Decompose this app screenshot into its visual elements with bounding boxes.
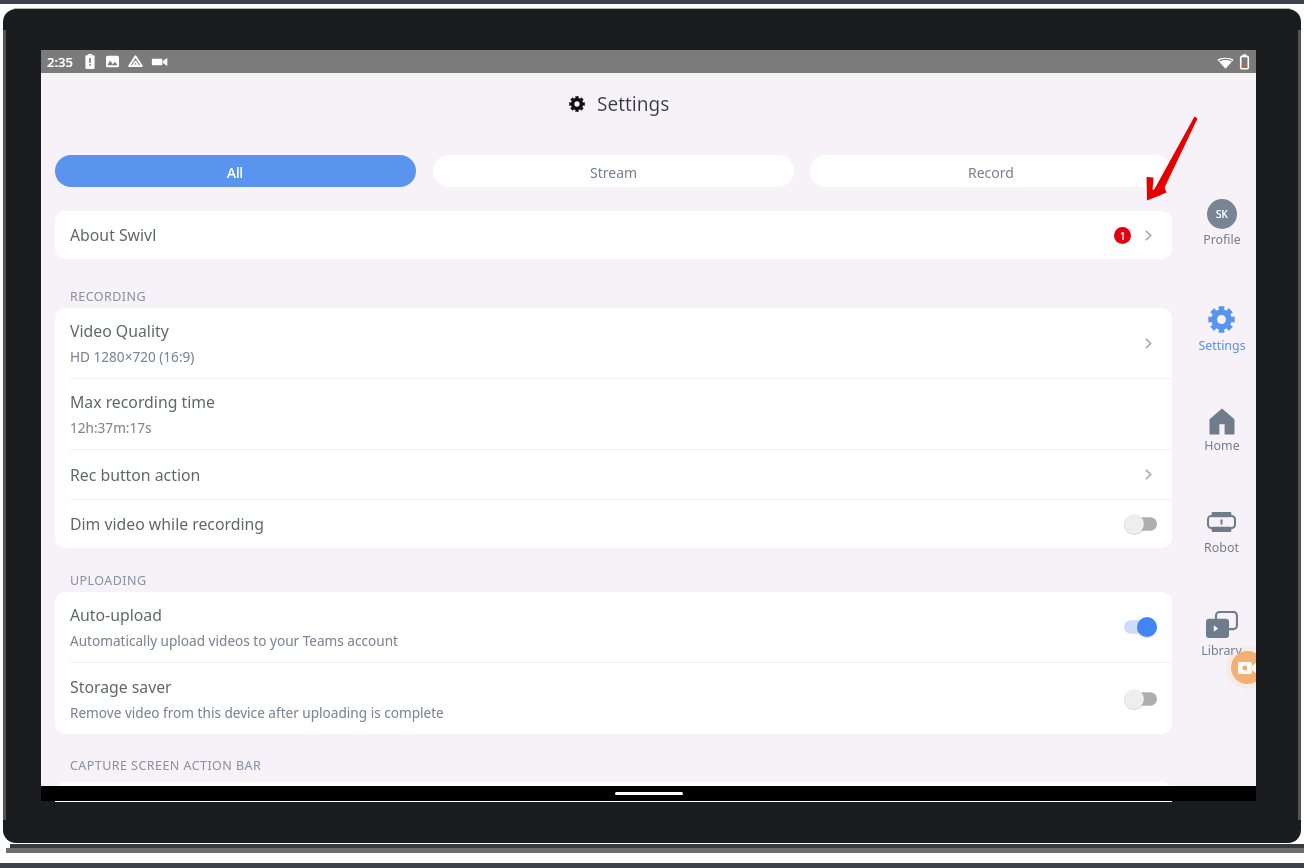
staticText: Storage saver (70, 676, 172, 698)
staticText: Auto-upload (70, 604, 162, 626)
button[interactable]: Home (1187, 408, 1256, 460)
staticText: Automatically upload videos to your Team… (70, 631, 398, 650)
staticText: Remove video from this device after uplo… (70, 703, 444, 722)
staticText: HD 1280×720 (16:9) (70, 347, 195, 366)
staticText: UPLOADING (70, 572, 147, 589)
button[interactable]: SK (1187, 199, 1256, 251)
staticText: CAPTURE SCREEN ACTION BAR (70, 757, 262, 774)
button[interactable]: Rec button action (55, 450, 1172, 499)
staticText: About Swivl (70, 224, 157, 246)
button[interactable]: Auto-upload, on (1124, 617, 1157, 637)
staticText: 12h:37m:17s (70, 418, 152, 437)
staticText: RECORDING (70, 288, 146, 305)
staticText: Record (968, 163, 1014, 182)
staticText: Video Quality (70, 320, 169, 342)
button[interactable]: Settings (1187, 306, 1256, 358)
staticText: Stream (590, 163, 638, 182)
staticText: Settings (597, 91, 670, 117)
staticText: Profile (1203, 231, 1241, 248)
staticText: Robot (1204, 539, 1239, 556)
button[interactable]: About Swivl (55, 211, 1172, 259)
button[interactable]: Robot (1187, 512, 1256, 564)
staticText: 1 (1120, 229, 1126, 243)
button[interactable]: Record video (1231, 651, 1256, 684)
staticText: Rec button action (70, 464, 201, 486)
button[interactable]: Max recording time (55, 379, 1172, 449)
button[interactable]: All (55, 155, 416, 187)
staticText: 2:35 (47, 53, 73, 71)
button[interactable]: Auto-upload (55, 592, 1172, 662)
staticText: All (227, 163, 244, 182)
button[interactable]: Record (810, 155, 1171, 187)
button[interactable]: Dim video while recording (55, 500, 1172, 548)
staticText: Home (1204, 437, 1240, 454)
button[interactable]: Library (1187, 611, 1256, 663)
button[interactable]: Dim video while recording, off (1124, 514, 1157, 534)
staticText: SK (1216, 207, 1228, 221)
button[interactable]: Storage saver (55, 663, 1172, 734)
staticText: Dim video while recording (70, 513, 264, 535)
button[interactable]: Stream (433, 155, 794, 187)
button[interactable]: Storage saver, off (1124, 689, 1157, 709)
staticText: Library (1201, 642, 1242, 659)
staticText: Max recording time (70, 391, 215, 413)
staticText: Settings (1198, 337, 1246, 354)
button[interactable]: Video Quality (55, 308, 1172, 378)
